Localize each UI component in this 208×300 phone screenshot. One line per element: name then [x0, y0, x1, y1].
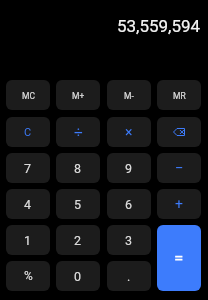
staticText: 2	[74, 233, 82, 248]
button[interactable]: ÷	[56, 117, 100, 147]
button[interactable]: C	[6, 117, 50, 147]
button[interactable]: −	[157, 153, 201, 183]
button[interactable]: 0	[56, 261, 100, 291]
staticText: 1	[24, 233, 32, 248]
staticText: 6	[125, 197, 133, 212]
staticText: .	[127, 269, 131, 284]
button[interactable]: 7	[6, 153, 50, 183]
button[interactable]: 1	[6, 225, 50, 255]
staticText: MR	[173, 91, 186, 101]
staticText: −	[175, 159, 184, 177]
staticText: C	[24, 126, 32, 139]
button[interactable]: MR	[157, 80, 201, 110]
staticText: 53,559,594	[117, 16, 201, 36]
button[interactable]: Backspace	[157, 117, 201, 147]
button[interactable]: 4	[6, 189, 50, 219]
staticText: =	[174, 248, 184, 268]
button[interactable]: 3	[107, 225, 151, 255]
staticText: +	[175, 196, 183, 212]
button[interactable]: =	[157, 225, 201, 291]
staticText: ×	[125, 124, 133, 140]
staticText: 9	[125, 161, 133, 176]
button[interactable]: 8	[56, 153, 100, 183]
button[interactable]: 2	[56, 225, 100, 255]
staticText: ÷	[74, 123, 83, 141]
button[interactable]: MC	[6, 80, 50, 110]
button[interactable]: 6	[107, 189, 151, 219]
staticText: 3	[125, 233, 133, 248]
button[interactable]: .	[107, 261, 151, 291]
staticText: M-	[124, 91, 134, 101]
button[interactable]: +	[157, 189, 201, 219]
staticText: 8	[74, 161, 82, 176]
button[interactable]: M-	[107, 80, 151, 110]
button[interactable]: M+	[56, 80, 100, 110]
staticText: 5	[74, 197, 82, 212]
staticText: %	[24, 269, 33, 283]
staticText: MC	[22, 91, 35, 101]
button[interactable]: 5	[56, 189, 100, 219]
staticText: 0	[74, 269, 82, 284]
button[interactable]: ×	[107, 117, 151, 147]
staticText: 4	[24, 197, 32, 212]
staticText: M+	[72, 91, 85, 101]
button[interactable]: %	[6, 261, 50, 291]
button[interactable]: 9	[107, 153, 151, 183]
staticText: 7	[24, 161, 32, 176]
